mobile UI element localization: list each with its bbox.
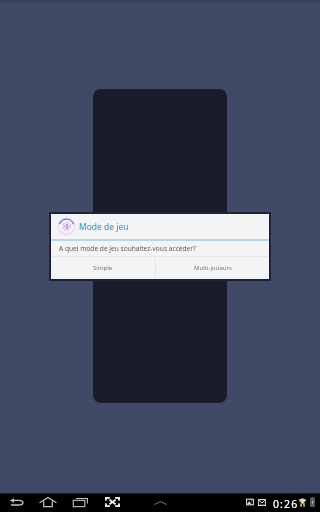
button[interactable]: Multi-joueurs [156,257,269,279]
staticText: Simple [93,264,113,272]
staticText: 0:26 [273,497,299,511]
button[interactable]: Expand notifications [148,493,173,512]
button[interactable]: Simple [51,257,155,279]
button[interactable]: Recent apps [67,493,94,512]
button[interactable]: Shrink screen [99,493,126,512]
staticText: Multi-joueurs [194,264,232,272]
staticText: Mode de jeu [79,221,129,233]
button[interactable]: Back [4,493,30,512]
staticText: A quel mode de jeu souhaitez-vous accéde… [59,244,196,253]
button[interactable]: Home [34,493,62,512]
